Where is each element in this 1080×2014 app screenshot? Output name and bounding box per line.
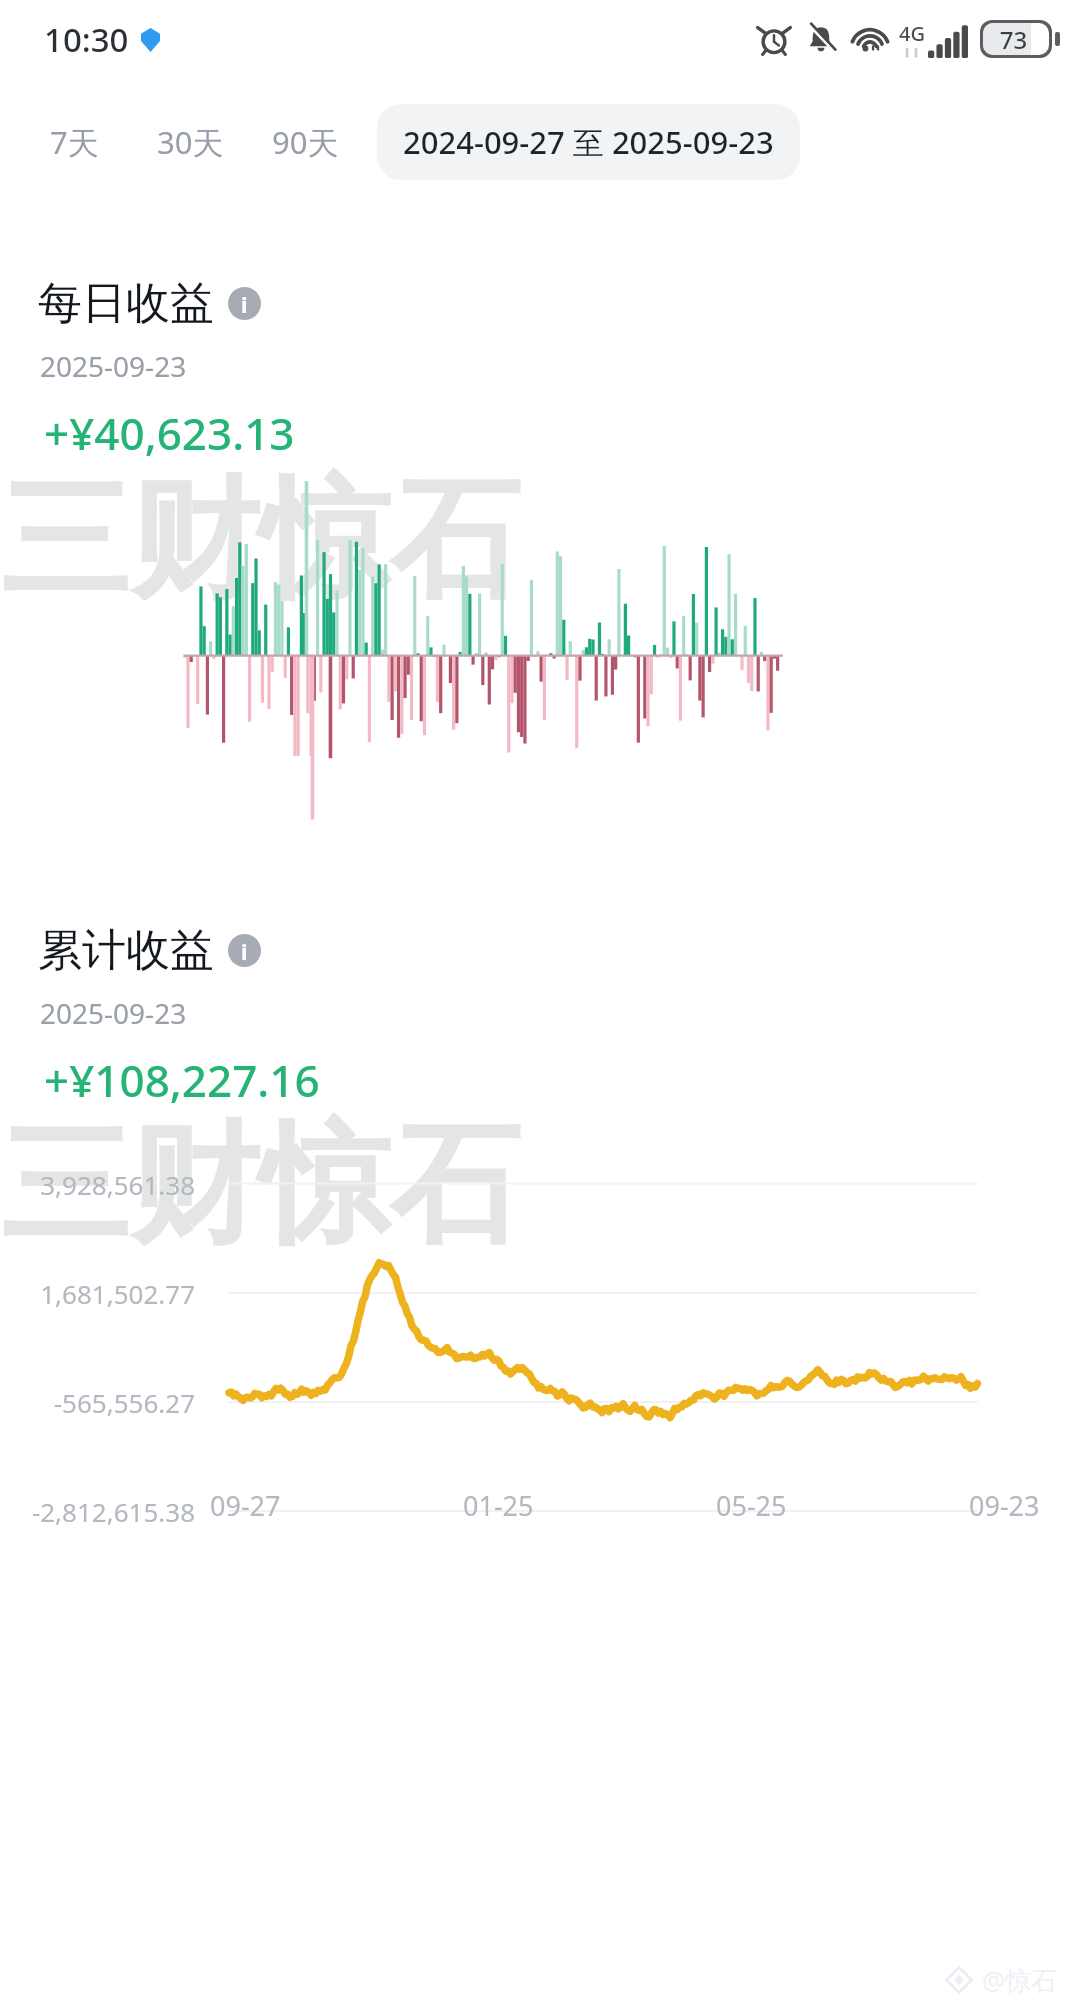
staticText: 累计收益 bbox=[38, 923, 214, 978]
staticText: 05-25 bbox=[716, 1487, 787, 1524]
button[interactable]: 累计收益 bbox=[38, 923, 261, 978]
button[interactable]: 每日收益 bbox=[38, 276, 261, 331]
staticText: 2025-09-23 bbox=[40, 994, 187, 1032]
staticText: i bbox=[241, 936, 248, 966]
staticText: 09-23 bbox=[969, 1487, 1040, 1524]
button[interactable]: 2024-09-27 至 2025-09-23 bbox=[377, 104, 800, 180]
staticText: 4G bbox=[899, 20, 925, 47]
staticText: 每日收益 bbox=[38, 276, 214, 331]
other: Info bbox=[228, 934, 261, 967]
staticText: 3,928,561.38 bbox=[0, 1167, 195, 1202]
staticText: 2024-09-27 至 2025-09-23 bbox=[403, 121, 774, 163]
staticText: 90天 bbox=[272, 121, 339, 163]
button[interactable]: 30天 bbox=[155, 113, 226, 171]
other: Info bbox=[228, 287, 261, 320]
staticText: 1,681,502.77 bbox=[0, 1276, 195, 1311]
staticText: +¥40,623.13 bbox=[44, 403, 295, 463]
staticText: -565,556.27 bbox=[0, 1385, 195, 1420]
staticText: 30天 bbox=[157, 121, 224, 163]
button[interactable]: 90天 bbox=[270, 113, 341, 171]
button[interactable]: 7天 bbox=[48, 113, 101, 171]
staticText: 09-27 bbox=[210, 1487, 281, 1524]
staticText: 7天 bbox=[50, 121, 99, 163]
staticText: 三财惊石 bbox=[0, 1104, 520, 1268]
staticText: +¥108,227.16 bbox=[44, 1050, 320, 1110]
staticText: @惊石 bbox=[982, 1962, 1058, 1998]
staticText: 三财惊石 bbox=[0, 459, 520, 623]
staticText: 10:30 bbox=[44, 17, 129, 62]
staticText: -2,812,615.38 bbox=[0, 1494, 195, 1529]
staticText: i bbox=[241, 289, 248, 319]
staticText: 01-25 bbox=[463, 1487, 534, 1524]
staticText: 2025-09-23 bbox=[40, 347, 187, 385]
staticText: 73 bbox=[983, 23, 1044, 55]
